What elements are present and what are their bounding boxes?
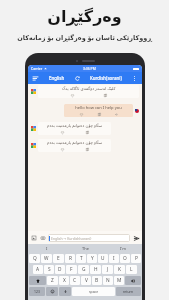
staticText: سڵاو چۆن دەتوانم یارمەتیت بدەم <box>40 123 109 129</box>
staticText: W <box>44 255 49 262</box>
staticText: N <box>106 277 110 284</box>
staticText: The <box>82 246 89 251</box>
staticText: I <box>113 255 115 262</box>
staticText: E <box>57 255 60 262</box>
staticText: A <box>36 266 40 273</box>
button[interactable]: Copy <box>85 130 89 134</box>
button[interactable]: N <box>103 276 113 285</box>
button[interactable]: Pick image <box>30 234 37 241</box>
button[interactable]: X <box>59 276 69 285</box>
button[interactable]: space <box>72 287 115 296</box>
staticText: سڵاو چۆن دەتوانم یارمەتیت بدەم <box>40 140 109 146</box>
button[interactable]: Camera <box>39 234 46 241</box>
button[interactable]: W <box>41 254 52 263</box>
staticText: ڕووکارێکی ئاسان بۆ وەرگێڕان بۆ زمانەکان <box>17 33 152 42</box>
button[interactable]: Y <box>87 254 97 263</box>
staticText: Carrier <box>31 66 43 71</box>
button[interactable]: Swap languages <box>73 74 82 83</box>
staticText: J <box>107 266 109 273</box>
button[interactable]: H <box>90 265 101 274</box>
button[interactable]: More options <box>130 74 139 83</box>
button[interactable]: Favorite <box>60 130 64 134</box>
button[interactable]: O <box>120 254 130 263</box>
button[interactable]: I <box>109 254 119 263</box>
button[interactable]: D <box>55 265 65 274</box>
staticText: Kurdish(sorani) <box>90 75 122 81</box>
button[interactable]: R <box>65 254 75 263</box>
button[interactable]: Send <box>132 234 140 242</box>
staticText: I <box>46 246 48 251</box>
button[interactable]: Q <box>29 254 40 263</box>
button[interactable]: A <box>33 265 43 274</box>
button[interactable]: Backspace <box>125 276 141 285</box>
button[interactable]: Speak <box>114 112 118 116</box>
button[interactable]: U <box>98 254 108 263</box>
staticText: R <box>69 255 72 262</box>
button[interactable]: B <box>92 276 102 285</box>
button[interactable]: Copy <box>103 93 107 97</box>
staticText: F <box>70 266 73 273</box>
button[interactable]: Dictation <box>59 287 71 296</box>
button[interactable]: Favorite <box>70 93 74 97</box>
staticText: C <box>73 277 77 284</box>
button[interactable]: I'm <box>104 244 142 253</box>
button[interactable]: Copy <box>85 147 89 151</box>
button[interactable]: G <box>78 265 89 274</box>
button[interactable]: T <box>76 254 86 263</box>
button[interactable]: hello how can I help you <box>64 104 133 117</box>
staticText: B <box>95 277 99 284</box>
button[interactable]: سڵاو چۆن دەتوانم یارمەتیت بدەم <box>38 122 111 135</box>
button[interactable]: C <box>70 276 80 285</box>
button[interactable]: J <box>102 265 113 274</box>
staticText: X <box>63 277 66 284</box>
staticText: S <box>48 266 51 273</box>
staticText: V <box>85 277 88 284</box>
staticText: L <box>130 266 133 273</box>
button[interactable]: P <box>131 254 141 263</box>
button[interactable]: English <box>48 74 66 82</box>
staticText: کلیک لەسەر دوگمەی ئاگاکە یەک <box>40 86 137 92</box>
button[interactable]: F <box>66 265 77 274</box>
button[interactable]: L <box>126 265 137 274</box>
staticText: Z <box>51 277 54 284</box>
staticText: 3:36 PM <box>83 66 96 71</box>
staticText: T <box>80 255 83 262</box>
button[interactable]: M <box>114 276 124 285</box>
staticText: D <box>58 266 62 273</box>
button[interactable]: V <box>81 276 91 285</box>
button[interactable]: Emoji <box>46 287 58 296</box>
button[interactable]: Favorite <box>79 112 83 116</box>
button[interactable]: English → Kurdish(sorani) <box>48 234 130 242</box>
button[interactable]: Favorite <box>60 147 64 151</box>
staticText: I'm <box>120 246 126 251</box>
staticText: English <box>49 75 65 81</box>
staticText: M <box>117 277 122 284</box>
staticText: K <box>118 266 121 273</box>
button[interactable]: The <box>66 244 104 253</box>
staticText: H <box>94 266 98 273</box>
button[interactable]: 123 <box>29 287 45 296</box>
staticText: return <box>123 289 134 294</box>
button[interactable]: سڵاو چۆن دەتوانم یارمەتیت بدەم <box>38 139 111 152</box>
staticText: 123 <box>34 289 40 294</box>
staticText: English → Kurdish(sorani) <box>51 236 92 241</box>
staticText: U <box>101 255 105 262</box>
staticText: P <box>135 255 138 262</box>
button[interactable]: S <box>44 265 54 274</box>
button[interactable]: K <box>114 265 125 274</box>
button[interactable]: return <box>116 287 141 296</box>
button[interactable]: کلیک لەسەر دوگمەی ئاگاکە یەک <box>38 85 139 98</box>
button[interactable]: Z <box>47 276 58 285</box>
staticText: وەرگێڕان <box>47 7 122 26</box>
button[interactable]: Shift <box>29 276 46 285</box>
staticText: Q <box>33 255 37 262</box>
staticText: Y <box>91 255 94 262</box>
staticText: G <box>82 266 86 273</box>
button[interactable]: E <box>53 254 64 263</box>
button[interactable]: Menu <box>31 74 40 83</box>
staticText: O <box>123 255 127 262</box>
button[interactable]: Copy <box>97 112 101 116</box>
button[interactable]: I <box>28 244 66 253</box>
button[interactable]: Kurdish(sorani) <box>89 74 123 82</box>
staticText: space <box>89 289 99 294</box>
